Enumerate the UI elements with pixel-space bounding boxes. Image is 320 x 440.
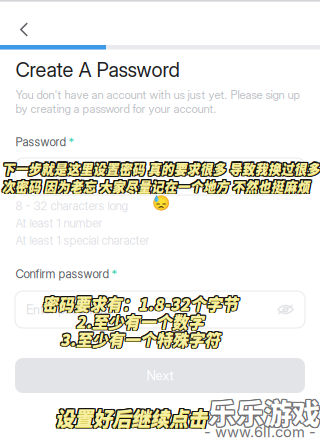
staticText: 3.至少有一个特殊字符 [60, 329, 220, 351]
button[interactable]: Back [4, 8, 44, 51]
staticText: 密码要求有：1.8-32个字节 [43, 292, 239, 315]
staticText: 密码要求有：1.8-32个字节 [42, 292, 238, 315]
staticText: 次密码 因为老忘 大家尽量记在一个地方 不然也挺麻烦 [1, 175, 309, 194]
staticText: 2.至少有一个数字 [77, 311, 205, 334]
staticText: 设置好后继续点击 [55, 404, 207, 432]
staticText: 下一步就是这里设置密码 真的要求很多 导致我换过很多 [2, 159, 320, 177]
staticText: - www.6ll.com - [204, 423, 316, 440]
staticText: 设置好后继续点击 [54, 405, 206, 433]
staticText: 乐乐游戏 [209, 392, 320, 432]
staticText: 次密码 因为老忘 大家尽量记在一个地方 不然也挺麻烦 [3, 178, 311, 196]
staticText: 😓 [152, 194, 170, 211]
staticText: 下一步就是这里设置密码 真的要求很多 导致我换过很多 [3, 159, 320, 177]
staticText: 密码要求有：1.8-32个字节 [42, 293, 238, 315]
staticText: * [111, 267, 117, 281]
staticText: 次密码 因为老忘 大家尽量记在一个地方 不然也挺麻烦 [1, 178, 309, 196]
staticText: * [68, 135, 74, 149]
staticText: 次密码 因为老忘 大家尽量记在一个地方 不然也挺麻烦 [1, 175, 309, 194]
staticText: 2.至少有一个数字 [76, 309, 204, 332]
staticText: 次密码 因为老忘 大家尽量记在一个地方 不然也挺麻烦 [2, 178, 310, 196]
staticText: You don't have an account with us just y… [15, 88, 299, 102]
staticText: 乐乐游戏 [209, 391, 320, 431]
staticText: 下一步就是这里设置密码 真的要求很多 导致我换过很多 [1, 158, 319, 176]
staticText: Confirm password [15, 267, 109, 281]
staticText: 密码要求有：1.8-32个字节 [43, 293, 239, 316]
staticText: 下一步就是这里设置密码 真的要求很多 导致我换过很多 [2, 160, 320, 178]
staticText: 密码要求有：1.8-32个字节 [43, 291, 239, 314]
staticText: 2.至少有一个数字 [77, 309, 205, 332]
staticText: 乐乐游戏 [207, 393, 319, 433]
staticText: 下一步就是这里设置密码 真的要求很多 导致我换过很多 [1, 158, 319, 176]
staticText: 3.至少有一个特殊字符 [61, 327, 221, 349]
staticText: 下一步就是这里设置密码 真的要求很多 导致我换过很多 [3, 160, 320, 178]
staticText: 乐乐游戏 [207, 391, 319, 431]
staticText: 2.至少有一个数字 [75, 311, 203, 334]
staticText: 密码要求有：1.8-32个字节 [41, 293, 237, 316]
staticText: 3.至少有一个特殊字符 [59, 327, 219, 349]
staticText: 密码要求有：1.8-32个字节 [41, 291, 237, 314]
staticText: 3.至少有一个特殊字符 [59, 327, 219, 349]
staticText: 次密码 因为老忘 大家尽量记在一个地方 不然也挺麻烦 [3, 178, 311, 196]
staticText: 3.至少有一个特殊字符 [60, 328, 220, 351]
staticText: 设置好后继续点击 [56, 403, 208, 430]
staticText: 设置好后继续点击 [56, 405, 208, 433]
staticText: At least 1 special character [15, 233, 149, 248]
staticText: 2.至少有一个数字 [75, 309, 203, 332]
staticText: 2.至少有一个数字 [76, 310, 204, 333]
staticText: 2.至少有一个数字 [76, 311, 204, 334]
staticText: 下一步就是这里设置密码 真的要求很多 导致我换过很多 [2, 158, 320, 176]
staticText: 次密码 因为老忘 大家尽量记在一个地方 不然也挺麻烦 [1, 177, 309, 195]
staticText: 下一步就是这里设置密码 真的要求很多 导致我换过很多 [1, 159, 319, 177]
staticText: Next [146, 367, 173, 383]
staticText: 设置好后继续点击 [56, 404, 208, 432]
staticText: 乐乐游戏 [209, 393, 320, 433]
staticText: 3.至少有一个特殊字符 [61, 329, 221, 351]
staticText: 乐乐游戏 [208, 392, 320, 432]
staticText: 下一步就是这里设置密码 真的要求很多 导致我换过很多 [2, 160, 320, 178]
staticText: 3.至少有一个特殊字符 [60, 327, 220, 349]
staticText: 设置好后继续点击 [55, 405, 207, 433]
staticText: 设置好后继续点击 [56, 405, 208, 433]
staticText: Enter password [26, 302, 111, 317]
staticText: 密码要求有：1.8-32个字节 [42, 291, 238, 314]
staticText: 乐乐游戏 [207, 392, 319, 432]
staticText: 2.至少有一个数字 [75, 309, 203, 332]
staticText: 8 - 32 characters long [15, 199, 128, 213]
staticText: 设置好后继续点击 [55, 405, 207, 432]
staticText: Create A Password [15, 57, 179, 82]
staticText: 2.至少有一个数字 [76, 310, 204, 333]
staticText: 密码要求有：1.8-32个字节 [42, 293, 238, 316]
staticText: 次密码 因为老忘 大家尽量记在一个地方 不然也挺麻烦 [2, 175, 310, 194]
staticText: 3.至少有一个特殊字符 [60, 329, 220, 351]
staticText: 3.至少有一个特殊字符 [59, 329, 219, 351]
staticText: 3.至少有一个特殊字符 [59, 328, 219, 350]
staticText: 2.至少有一个数字 [76, 311, 204, 334]
staticText: 密码要求有：1.8-32个字节 [42, 293, 238, 316]
button[interactable]: Show password [277, 303, 294, 316]
staticText: 2.至少有一个数字 [75, 310, 203, 333]
staticText: 3.至少有一个特殊字符 [61, 328, 221, 350]
staticText: At least 1 number [15, 216, 102, 230]
staticText: 密码要求有：1.8-32个字节 [41, 292, 237, 315]
staticText: 下一步就是这里设置密码 真的要求很多 导致我换过很多 [3, 158, 320, 176]
staticText: 密码要求有：1.8-32个字节 [41, 291, 237, 314]
staticText: 设置好后继续点击 [55, 403, 207, 430]
staticText: 次密码 因为老忘 大家尽量记在一个地方 不然也挺麻烦 [3, 177, 311, 195]
staticText: 2.至少有一个数字 [77, 310, 205, 333]
staticText: 设置好后继续点击 [54, 403, 206, 430]
staticText: 下一步就是这里设置密码 真的要求很多 导致我换过很多 [3, 160, 320, 178]
staticText: 次密码 因为老忘 大家尽量记在一个地方 不然也挺麻烦 [2, 177, 310, 195]
staticText: by creating a password for your account. [15, 102, 216, 116]
staticText: 设置好后继续点击 [54, 404, 206, 432]
staticText: 次密码 因为老忘 大家尽量记在一个地方 不然也挺麻烦 [2, 177, 310, 196]
staticText: 乐乐游戏 [208, 393, 320, 433]
staticText: 设置好后继续点击 [54, 403, 206, 430]
staticText: 乐乐游戏 [208, 391, 320, 431]
staticText: 3.至少有一个特殊字符 [60, 328, 220, 350]
staticText: 次密码 因为老忘 大家尽量记在一个地方 不然也挺麻烦 [3, 175, 311, 194]
staticText: 下一步就是这里设置密码 真的要求很多 导致我换过很多 [1, 160, 319, 178]
staticText: Password [15, 135, 66, 149]
